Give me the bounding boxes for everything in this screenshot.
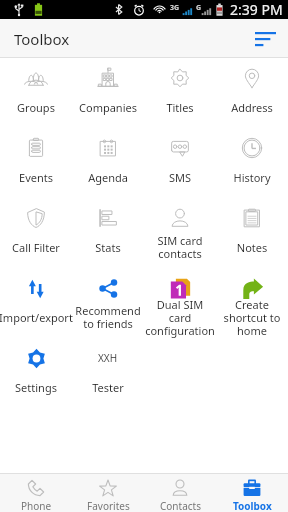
- button[interactable]: Sort: [243, 19, 288, 58]
- staticText: History: [202, 170, 288, 185]
- staticText: Toolbox: [14, 29, 70, 49]
- staticText: XXH: [98, 351, 118, 365]
- button[interactable]: Companies: [72, 58, 144, 128]
- button[interactable]: Create shortcut to home: [216, 268, 288, 338]
- staticText: Companies: [58, 100, 158, 115]
- staticText: SIM card contacts: [130, 233, 230, 261]
- button[interactable]: Events: [0, 128, 72, 198]
- staticText: Toolbox: [233, 499, 272, 512]
- staticText: Titles: [130, 100, 230, 115]
- staticText: Create shortcut to home: [202, 297, 288, 338]
- button[interactable]: Titles: [144, 58, 216, 128]
- staticText: Stats: [58, 240, 158, 255]
- staticText: Recommend to friends: [58, 303, 158, 331]
- button[interactable]: Toolbox: [216, 474, 288, 512]
- staticText: Dual SIM card configuration: [130, 297, 230, 338]
- staticText: Address: [202, 100, 288, 115]
- staticText: Groups: [0, 100, 86, 115]
- button[interactable]: Recommend to friends: [72, 268, 144, 338]
- button[interactable]: Agenda: [72, 128, 144, 198]
- button[interactable]: Stats: [72, 198, 144, 268]
- button[interactable]: Notes: [216, 198, 288, 268]
- button[interactable]: XXH: [72, 338, 144, 408]
- staticText: Settings: [0, 380, 86, 395]
- staticText: G: [196, 3, 202, 13]
- staticText: Contacts: [160, 499, 201, 512]
- staticText: Favorites: [87, 499, 130, 512]
- staticText: SMS: [130, 170, 230, 185]
- button[interactable]: History: [216, 128, 288, 198]
- button[interactable]: SIM card contacts: [144, 198, 216, 268]
- staticText: Tester: [58, 380, 158, 395]
- staticText: Phone: [21, 499, 52, 512]
- staticText: Call Filter: [0, 240, 86, 255]
- staticText: Import/export: [0, 310, 86, 325]
- button[interactable]: Settings: [0, 338, 72, 408]
- button[interactable]: Groups: [0, 58, 72, 128]
- button[interactable]: Phone: [0, 474, 72, 512]
- button[interactable]: Import/export: [0, 268, 72, 338]
- staticText: Agenda: [58, 170, 158, 185]
- staticText: 3G: [170, 3, 180, 13]
- button[interactable]: SMS: [144, 128, 216, 198]
- button[interactable]: Dual SIM card configuration: [144, 268, 216, 338]
- button[interactable]: Address: [216, 58, 288, 128]
- button[interactable]: Call Filter: [0, 198, 72, 268]
- button[interactable]: Favorites: [72, 474, 144, 512]
- staticText: Events: [0, 170, 86, 185]
- staticText: Notes: [202, 240, 288, 255]
- button[interactable]: Contacts: [144, 474, 216, 512]
- staticText: 2:39 PM: [230, 0, 283, 19]
